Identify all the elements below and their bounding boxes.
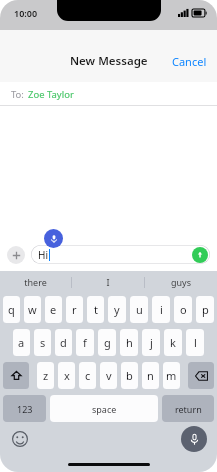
staticText: o (180, 302, 187, 317)
staticText: n (147, 368, 154, 383)
button[interactable]: r (66, 296, 83, 323)
button[interactable]: return (162, 395, 214, 422)
button[interactable]: there (0, 271, 71, 293)
staticText: i (160, 302, 163, 317)
staticText: y (114, 302, 120, 317)
staticText: s (40, 335, 46, 350)
button[interactable]: e (45, 296, 62, 323)
staticText: 10:00 (14, 7, 38, 19)
staticText: there (24, 276, 47, 288)
button[interactable]: guys (145, 271, 217, 293)
staticText: return (175, 403, 202, 415)
staticText: t (94, 302, 98, 317)
button[interactable]: l (186, 329, 204, 356)
staticText: l (194, 335, 197, 350)
button[interactable]: m (163, 362, 180, 389)
staticText: Cancel (172, 54, 207, 69)
button[interactable]: a (13, 329, 30, 356)
staticText: space (92, 403, 117, 415)
staticText: 123 (17, 403, 33, 415)
staticText: p (202, 302, 209, 317)
button[interactable]: i (152, 296, 170, 323)
button[interactable]: y (108, 296, 126, 323)
button[interactable]: v (100, 362, 117, 389)
staticText: g (104, 335, 111, 350)
staticText: Hi (38, 248, 48, 262)
button[interactable]: Cancel (162, 49, 217, 74)
staticText: z (43, 368, 49, 383)
staticText: j (150, 335, 153, 350)
button[interactable]: w (24, 296, 41, 323)
button[interactable]: b (121, 362, 138, 389)
button[interactable]: u (130, 296, 148, 323)
staticText: q (8, 302, 15, 317)
button[interactable]: x (58, 362, 75, 389)
button[interactable]: j (142, 329, 160, 356)
button[interactable]: Shift (3, 362, 29, 389)
staticText: r (72, 302, 77, 317)
staticText: f (83, 335, 87, 350)
staticText: a (18, 335, 25, 350)
button[interactable]: p (196, 296, 214, 323)
button[interactable]: Add attachment (7, 246, 25, 264)
button[interactable]: space (50, 395, 158, 422)
button[interactable]: 123 (3, 395, 46, 422)
staticText: w (28, 302, 37, 317)
button[interactable]: I (72, 271, 144, 293)
button[interactable]: t (87, 296, 104, 323)
button[interactable]: s (34, 329, 51, 356)
button[interactable]: n (142, 362, 159, 389)
button[interactable]: g (98, 329, 116, 356)
staticText: m (166, 368, 177, 383)
button[interactable]: f (76, 329, 94, 356)
staticText: b (126, 368, 133, 383)
button[interactable]: To: (0, 82, 217, 106)
button[interactable]: c (79, 362, 96, 389)
button[interactable]: Hi (31, 245, 210, 264)
button[interactable]: Backspace (188, 362, 214, 389)
staticText: guys (171, 276, 191, 288)
button[interactable]: d (55, 329, 72, 356)
staticText: u (136, 302, 143, 317)
staticText: d (60, 335, 67, 350)
button[interactable]: Dictation (44, 229, 63, 248)
button[interactable]: Send (192, 247, 208, 263)
button[interactable]: k (164, 329, 182, 356)
staticText: c (85, 368, 91, 383)
staticText: I (106, 276, 110, 288)
button[interactable]: z (37, 362, 54, 389)
button[interactable]: o (174, 296, 192, 323)
button[interactable]: h (120, 329, 138, 356)
button[interactable]: Dictate (181, 426, 207, 452)
staticText: New Message (70, 53, 148, 69)
staticText: h (126, 335, 133, 350)
button[interactable]: Emoji (12, 431, 28, 447)
staticText: v (106, 368, 112, 383)
staticText: k (170, 335, 176, 350)
button[interactable]: q (3, 296, 20, 323)
staticText: Zoe Taylor (28, 88, 74, 101)
staticText: To: (11, 88, 24, 101)
staticText: x (64, 368, 70, 383)
staticText: e (50, 302, 57, 317)
